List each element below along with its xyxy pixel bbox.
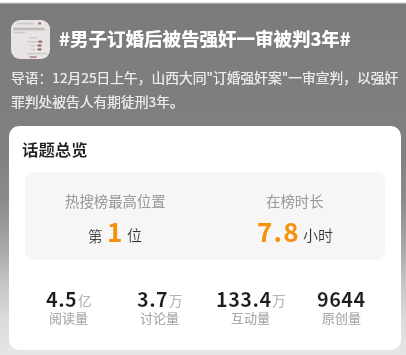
button[interactable]: 热搜榜最高位置 (25, 172, 205, 260)
staticText: 3.7 (137, 284, 169, 313)
staticText: 在榜时长 (266, 190, 324, 211)
staticText: 互动量 (231, 308, 271, 327)
staticText: 热搜榜最高位置 (65, 190, 166, 211)
staticText: 位 (127, 224, 143, 246)
button[interactable]: 9644 (296, 284, 387, 332)
staticText: 133.4 (216, 284, 272, 313)
staticText: 讨论量 (140, 308, 180, 327)
staticText: 1 (107, 212, 124, 250)
staticText: 小时 (303, 224, 334, 246)
button[interactable]: 4.5 (23, 284, 114, 332)
staticText: 导语：12月25日上午，山西大同"订婚强奸案"一审宣判，以强奸罪判处被告人有期徒… (11, 67, 403, 111)
button[interactable]: 在榜时长 (205, 172, 385, 260)
staticText: 万 (169, 290, 183, 310)
staticText: 万 (272, 290, 286, 310)
staticText: 第 (88, 225, 103, 246)
staticText: 亿 (78, 290, 92, 310)
button[interactable]: 3.7 (114, 284, 205, 332)
button[interactable]: 133.4 (205, 284, 296, 332)
staticText: 7.8 (257, 212, 300, 250)
staticText: #男子订婚后被告强奸一审被判3年# (59, 25, 351, 52)
staticText: 4.5 (46, 284, 78, 313)
staticText: 9644 (317, 284, 366, 313)
staticText: 话题总览 (22, 137, 88, 161)
staticText: 原创量 (322, 308, 362, 327)
button[interactable]: 话题封面 (11, 20, 50, 59)
staticText: 阅读量 (49, 308, 89, 327)
